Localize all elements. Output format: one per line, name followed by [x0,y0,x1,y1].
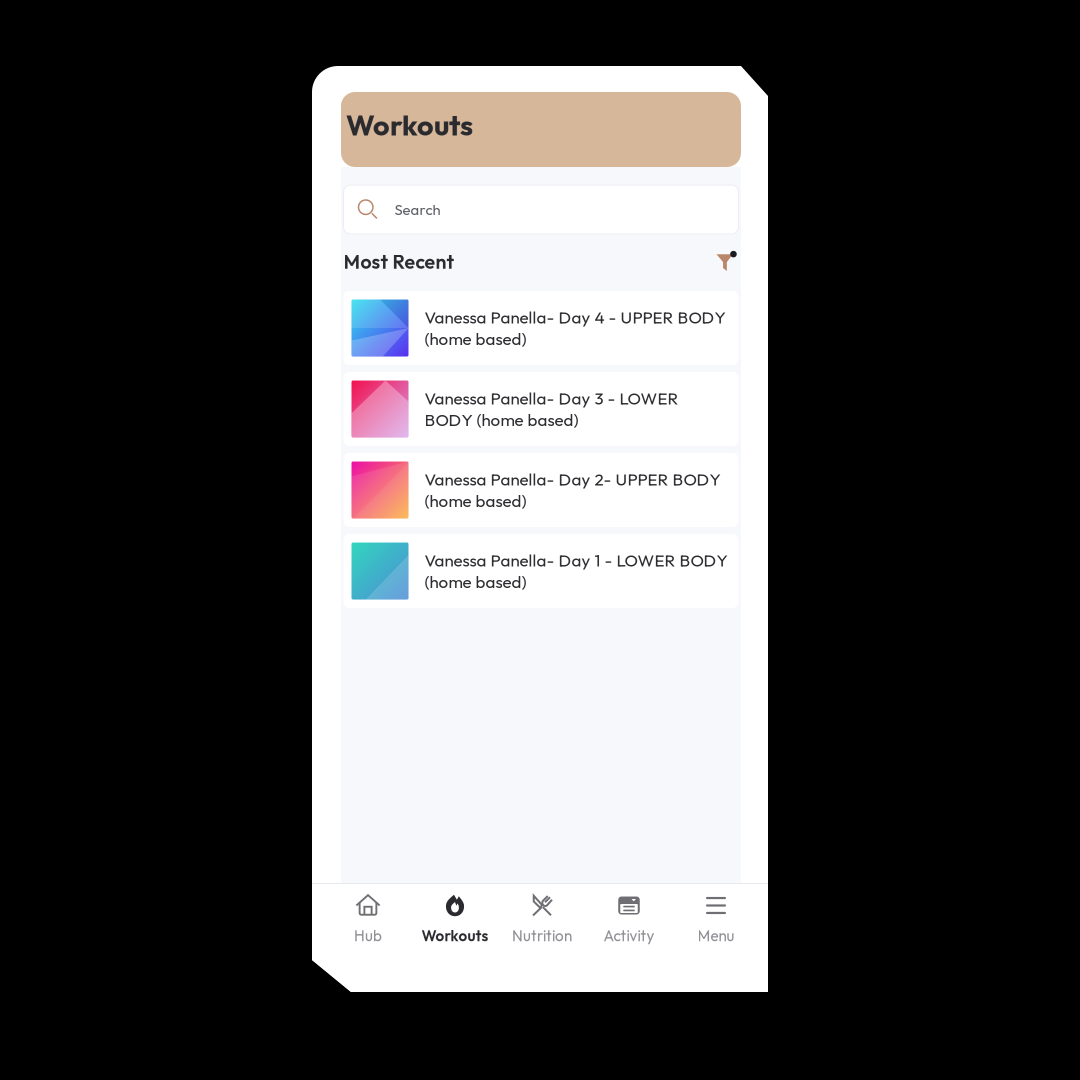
staticText: Vanessa Panella- Day 4 - UPPER BODY (hom… [424,307,725,349]
button[interactable]: Nutrition [498,892,585,946]
staticText: Vanessa Panella- Day 3 - LOWER BODY (hom… [424,388,678,430]
staticText: Activity [603,926,654,945]
button[interactable]: Activity [585,892,672,946]
button[interactable]: Filter [713,249,738,274]
staticText: Vanessa Panella- Day 2- UPPER BODY (home… [424,469,720,511]
button[interactable]: Menu [672,892,759,946]
staticText: Nutrition [512,926,572,945]
button[interactable]: Hub [324,892,411,946]
button[interactable]: Vanessa Panella- Day 2- UPPER BODY (home… [343,453,738,527]
staticText: Vanessa Panella- Day 1 - LOWER BODY (hom… [424,550,727,592]
staticText: Workouts [421,926,488,945]
button[interactable]: Workouts [411,892,498,946]
staticText: Workouts [346,107,473,143]
staticText: Search [394,200,440,219]
button[interactable]: Vanessa Panella- Day 4 - UPPER BODY (hom… [343,291,738,365]
button[interactable]: Search [343,185,738,234]
staticText: Most Recent [343,249,454,274]
staticText: Hub [354,926,382,945]
button[interactable]: Vanessa Panella- Day 1 - LOWER BODY (hom… [343,534,738,608]
staticText: Menu [697,926,734,945]
button[interactable]: Vanessa Panella- Day 3 - LOWER BODY (hom… [343,372,738,446]
